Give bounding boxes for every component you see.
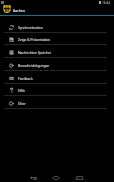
button[interactable]: Feedback [0, 71, 114, 84]
button[interactable]: Benachrichtigungen [0, 58, 114, 71]
staticText: Feedback [18, 76, 33, 80]
staticText: Synchronisation [18, 25, 43, 29]
staticText: Hilfe [18, 88, 26, 92]
staticText: Aachen [13, 8, 25, 13]
staticText: Über [18, 101, 26, 105]
button[interactable]: Back [23, 171, 44, 182]
button[interactable]: Über [0, 96, 114, 109]
staticText: Zeige & Präsentation [18, 37, 51, 41]
button[interactable]: Recents [68, 171, 89, 182]
staticText: Benachrichtigungen [18, 63, 50, 67]
staticText: Nachrichten Speicher [18, 50, 52, 54]
button[interactable]: Synchronisation [0, 20, 114, 33]
staticText: 16:44 [102, 1, 111, 5]
button[interactable]: Zeige & Präsentation [0, 32, 114, 45]
button[interactable]: Hilfe [0, 83, 114, 96]
button[interactable]: Home [45, 171, 66, 182]
button[interactable]: Nachrichten Speicher [0, 45, 114, 58]
